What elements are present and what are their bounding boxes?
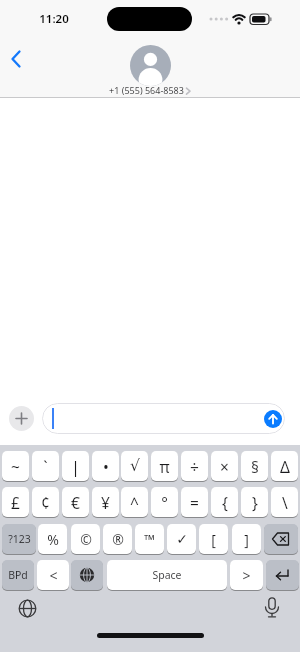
- button[interactable]: ÷: [181, 451, 208, 481]
- staticText: ]: [244, 530, 249, 549]
- button[interactable]: •: [92, 451, 119, 481]
- button[interactable]: [6, 46, 30, 72]
- staticText: +1 (555) 564-8583: [109, 84, 184, 96]
- staticText: √: [130, 457, 140, 475]
- button[interactable]: §: [241, 451, 268, 481]
- staticText: <: [49, 566, 58, 585]
- staticText: ^: [130, 492, 139, 513]
- button[interactable]: ^: [121, 487, 148, 517]
- button[interactable]: >: [230, 560, 263, 590]
- staticText: ×: [220, 456, 229, 477]
- staticText: BPd: [8, 568, 28, 582]
- button[interactable]: ¥: [92, 487, 119, 517]
- button[interactable]: [18, 599, 37, 618]
- staticText: =: [190, 492, 199, 513]
- button[interactable]: ¢: [32, 487, 59, 517]
- staticText: §: [251, 456, 259, 477]
- staticText: €: [71, 492, 80, 513]
- button[interactable]: {: [211, 487, 238, 517]
- staticText: >: [242, 566, 251, 585]
- button[interactable]: ✓: [167, 524, 196, 554]
- staticText: `: [43, 456, 48, 477]
- button[interactable]: √: [121, 451, 148, 481]
- button[interactable]: =: [181, 487, 208, 517]
- button[interactable]: ~: [2, 451, 29, 481]
- button[interactable]: ]: [232, 524, 261, 554]
- button[interactable]: ®: [103, 524, 132, 554]
- staticText: 11:20: [39, 11, 69, 27]
- staticText: ™: [144, 530, 155, 549]
- staticText: ¢: [41, 492, 50, 513]
- staticText: |: [71, 456, 80, 477]
- staticText: \: [282, 492, 288, 513]
- staticText: •: [103, 456, 109, 477]
- button[interactable]: +1 (555) 564-8583: [0, 84, 296, 96]
- button[interactable]: π: [151, 451, 178, 481]
- button[interactable]: °: [151, 487, 178, 517]
- button[interactable]: %: [38, 524, 67, 554]
- button[interactable]: €: [62, 487, 89, 517]
- staticText: [: [211, 530, 216, 549]
- button[interactable]: ?123: [2, 524, 36, 554]
- button[interactable]: Δ: [271, 451, 298, 481]
- button[interactable]: ™: [135, 524, 164, 554]
- staticText: }: [252, 492, 258, 513]
- button[interactable]: [130, 45, 171, 86]
- staticText: Space: [152, 568, 182, 582]
- staticText: ¥: [101, 492, 110, 513]
- button[interactable]: [: [199, 524, 228, 554]
- staticText: π: [159, 456, 170, 477]
- staticText: {: [222, 492, 228, 513]
- staticText: £: [11, 492, 20, 513]
- button[interactable]: [9, 406, 34, 431]
- button[interactable]: <: [37, 560, 69, 590]
- button[interactable]: [264, 410, 282, 428]
- button[interactable]: [266, 560, 299, 590]
- button[interactable]: [42, 403, 285, 434]
- button[interactable]: [264, 597, 280, 620]
- button[interactable]: `: [32, 451, 59, 481]
- staticText: %: [47, 530, 59, 549]
- button[interactable]: £: [2, 487, 29, 517]
- staticText: Δ: [280, 456, 290, 477]
- staticText: ~: [11, 456, 20, 477]
- button[interactable]: |: [62, 451, 89, 481]
- button[interactable]: [71, 560, 103, 590]
- button[interactable]: }: [241, 487, 268, 517]
- staticText: ?123: [8, 532, 31, 546]
- button[interactable]: ©: [71, 524, 100, 554]
- button[interactable]: ×: [211, 451, 238, 481]
- button[interactable]: [264, 524, 298, 554]
- staticText: ✓: [176, 531, 188, 547]
- staticText: ©: [80, 530, 92, 549]
- staticText: ®: [112, 530, 124, 549]
- button[interactable]: \: [271, 487, 298, 517]
- staticText: ÷: [190, 456, 199, 477]
- button[interactable]: Space: [107, 560, 227, 590]
- button[interactable]: BPd: [2, 560, 34, 590]
- staticText: °: [161, 492, 168, 513]
